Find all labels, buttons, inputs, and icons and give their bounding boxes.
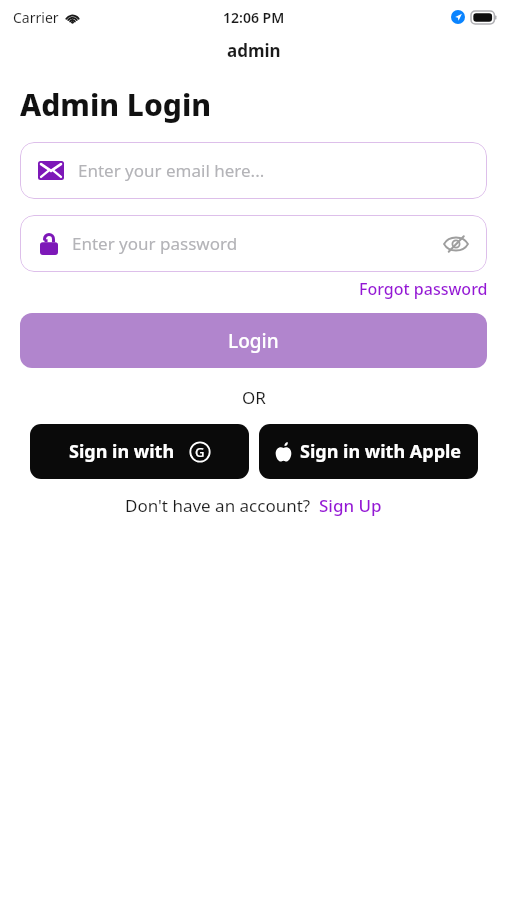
staticText: Don't have an account? [125,494,311,517]
staticText: Enter your email here... [78,159,265,182]
staticText: Login [228,328,279,354]
staticText: Sign in with [69,439,175,464]
button[interactable]: Enter your email here... [20,142,487,199]
button[interactable]: Enter your password [20,215,487,272]
staticText: Enter your password [72,232,441,255]
staticText: Admin Login [20,84,212,125]
button[interactable]: Login [20,313,487,368]
button[interactable]: Forgot password [359,278,488,300]
button[interactable]: Sign in with [30,424,249,479]
button[interactable]: Sign Up [319,494,382,517]
staticText: 12:06 PM [223,8,285,27]
staticText: Carrier [13,8,59,27]
button[interactable]: Sign in with Apple [259,424,478,479]
staticText: OR [242,386,266,409]
button[interactable]: Show password [441,229,471,259]
staticText: Sign in with Apple [300,439,462,464]
staticText: admin [227,39,281,62]
staticText: G [195,443,205,461]
